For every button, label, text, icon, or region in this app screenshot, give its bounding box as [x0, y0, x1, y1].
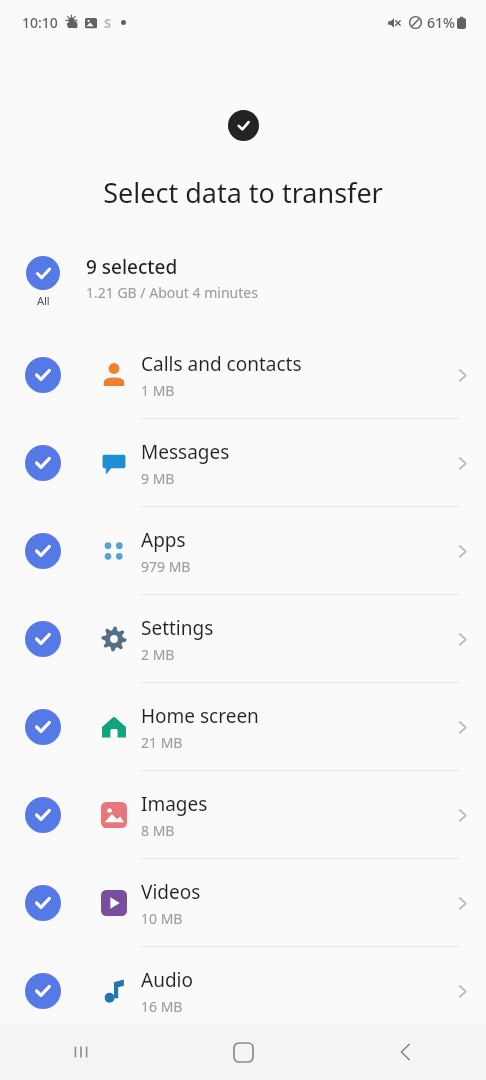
staticText: 979 MB	[141, 557, 191, 576]
staticText: 1.21 GB / About 4 minutes	[86, 283, 258, 302]
staticText: Settings	[141, 615, 214, 641]
button[interactable]: All	[0, 251, 486, 313]
staticText: 10:10	[22, 13, 58, 32]
button[interactable]: Home	[162, 1024, 324, 1080]
staticText: 16 MB	[141, 997, 183, 1016]
button[interactable]: Calls and contacts	[0, 331, 486, 419]
staticText: 10 MB	[141, 909, 183, 928]
staticText: 2 MB	[141, 645, 175, 664]
staticText: Select data to transfer	[0, 174, 486, 211]
button[interactable]: Home screen	[0, 683, 486, 771]
button[interactable]: Back	[324, 1024, 486, 1080]
staticText: 61%	[427, 13, 455, 32]
staticText: S	[104, 14, 112, 32]
staticText: 9 selected	[86, 254, 178, 280]
staticText: All	[37, 293, 50, 308]
staticText: Messages	[141, 439, 230, 465]
staticText: Apps	[141, 527, 186, 553]
button[interactable]: Audio	[0, 947, 486, 1035]
staticText: Home screen	[141, 703, 259, 729]
button[interactable]: Apps	[0, 507, 486, 595]
button[interactable]: Messages	[0, 419, 486, 507]
staticText: 21 MB	[141, 733, 183, 752]
staticText: 1 MB	[141, 381, 175, 400]
staticText: Calls and contacts	[141, 351, 302, 377]
button[interactable]: Images	[0, 771, 486, 859]
button[interactable]: Videos	[0, 859, 486, 947]
staticText: Videos	[141, 879, 201, 905]
staticText: 8 MB	[141, 821, 175, 840]
staticText: Images	[141, 791, 208, 817]
button[interactable]: Recents	[0, 1024, 162, 1080]
staticText: Audio	[141, 967, 193, 993]
staticText: 9 MB	[141, 469, 175, 488]
button[interactable]: Settings	[0, 595, 486, 683]
